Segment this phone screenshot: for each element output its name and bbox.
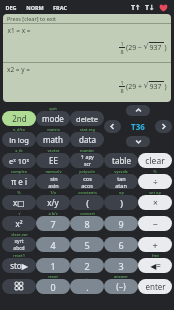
button[interactable]: ↑ apy: [70, 153, 104, 168]
button[interactable]: delete: [70, 111, 104, 126]
staticText: 1: [50, 260, 56, 272]
staticText: 1: [120, 79, 124, 86]
button[interactable]: 4: [36, 237, 70, 252]
button[interactable]: table: [104, 153, 138, 168]
button[interactable]: 2nd: [2, 111, 36, 126]
staticText: ,: [86, 274, 88, 279]
button[interactable]: sin: [36, 174, 70, 189]
staticText: numsolv: [45, 169, 62, 174]
staticText: constants: [78, 190, 97, 195]
button[interactable]: x/y: [36, 195, 70, 210]
staticText: 4: [50, 239, 56, 251]
staticText: abcd: [13, 245, 25, 252]
staticText: ◀=: [150, 260, 161, 271]
staticText: xyrt: [14, 238, 24, 245]
button[interactable]: ln log: [2, 132, 36, 147]
button[interactable]: x²: [2, 216, 36, 231]
staticText: cos: [83, 175, 92, 182]
staticText: T↓: [145, 3, 155, 13]
button[interactable]: Favorite: [158, 2, 169, 13]
staticText: op: [119, 190, 124, 195]
staticText: delete: [76, 114, 98, 124]
button[interactable]: math: [36, 132, 70, 147]
button[interactable]: xyrt: [2, 237, 36, 252]
button[interactable]: ×: [138, 195, 172, 210]
button[interactable]: 5: [70, 237, 104, 252]
staticText: 5: [84, 239, 90, 251]
staticText: 1/x: [50, 190, 56, 195]
staticText: 7: [50, 218, 56, 230]
staticText: FRAC: [53, 4, 67, 11]
button[interactable]: (: [70, 195, 104, 210]
button[interactable]: eˣ 10ˣ: [2, 153, 36, 168]
staticText: 8: [120, 48, 124, 55]
button[interactable]: ◀=: [138, 258, 172, 273]
staticText: a b/c: [48, 211, 58, 216]
button[interactable]: 2: [70, 258, 104, 273]
button[interactable]: Apps: [2, 279, 36, 294]
button[interactable]: π e i: [2, 174, 36, 189]
button[interactable]: data: [70, 132, 104, 147]
staticText: stat-reg: [80, 127, 95, 132]
staticText: sto▶: [10, 260, 28, 271]
button[interactable]: EE: [36, 153, 70, 168]
staticText: √: [143, 42, 149, 51]
staticText: √: [143, 81, 149, 90]
button[interactable]: 9: [104, 216, 138, 231]
button[interactable]: 0: [36, 279, 70, 294]
staticText: 2: [84, 260, 90, 272]
staticText: asin: [48, 182, 59, 189]
staticText: fmt: [152, 253, 159, 258]
button[interactable]: 7: [36, 216, 70, 231]
button[interactable]: 1: [36, 258, 70, 273]
button[interactable]: mode: [36, 111, 70, 126]
staticText: Press [clear] to exit: [7, 15, 56, 22]
button[interactable]: Left: [104, 120, 121, 133]
staticText: convert: [80, 211, 95, 216]
staticText: %: [153, 169, 157, 174]
staticText: EE: [49, 155, 58, 166]
button[interactable]: (−): [104, 279, 138, 294]
button[interactable]: Text size down: [144, 2, 155, 13]
staticText: math: [43, 134, 63, 145]
button[interactable]: Up: [126, 105, 150, 116]
staticText: sin: [50, 175, 58, 182]
staticText: 8: [120, 87, 124, 94]
button[interactable]: sto▶: [2, 258, 36, 273]
button[interactable]: 8: [70, 216, 104, 231]
button[interactable]: enter: [138, 279, 172, 294]
button[interactable]: ): [104, 195, 138, 210]
staticText: vector: [47, 148, 60, 153]
button[interactable]: 6: [104, 237, 138, 252]
button[interactable]: Down: [126, 136, 150, 147]
staticText: 8: [84, 218, 90, 230]
staticText: set op: [149, 190, 161, 195]
button[interactable]: +: [138, 237, 172, 252]
staticText: complex: [11, 169, 27, 174]
staticText: −: [152, 218, 158, 230]
staticText: (: [86, 197, 89, 209]
button[interactable]: 3: [104, 258, 138, 273]
button[interactable]: Right: [155, 120, 172, 133]
button[interactable]: tan: [104, 174, 138, 189]
button[interactable]: cos: [70, 174, 104, 189]
staticText: DEG: [5, 4, 17, 11]
staticText: 6: [118, 239, 124, 251]
staticText: acos: [81, 182, 93, 189]
button[interactable]: ÷: [138, 174, 172, 189]
staticText: (29 +: [125, 82, 143, 92]
button[interactable]: .: [70, 279, 104, 294]
staticText: clear-var: [11, 232, 28, 237]
staticText: (−): [116, 281, 126, 292]
staticText: ): [164, 82, 167, 92]
button[interactable]: clear: [138, 153, 172, 168]
staticText: n_d/tx: [13, 127, 25, 132]
button[interactable]: x□: [2, 195, 36, 210]
staticText: reset1: [13, 253, 25, 258]
button[interactable]: −: [138, 216, 172, 231]
staticText: table: [112, 155, 131, 166]
staticText: mode: [42, 113, 64, 124]
staticText: 0: [50, 281, 56, 293]
staticText: 2nd: [12, 113, 27, 124]
button[interactable]: Text size up: [130, 2, 141, 13]
